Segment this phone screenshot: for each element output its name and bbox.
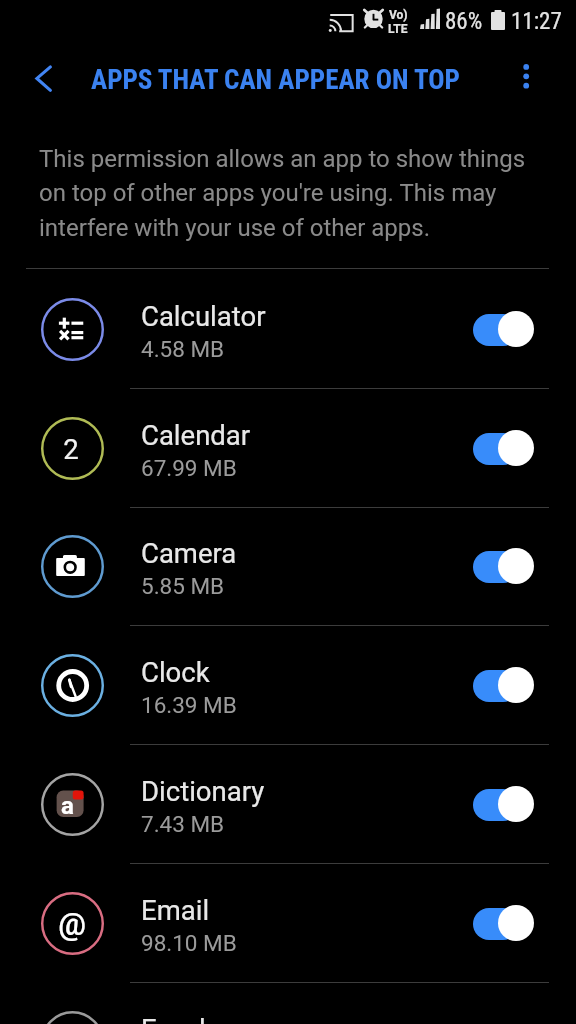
button[interactable]: More options: [508, 54, 546, 92]
staticText: @: [58, 906, 86, 942]
button[interactable]: Toggle Clock: [470, 667, 534, 705]
staticText: 86%: [445, 8, 483, 35]
button[interactable]: Navigate up: [18, 54, 60, 96]
staticText: Excel: [141, 1013, 206, 1024]
staticText: 16.39 MB: [141, 692, 237, 718]
button[interactable]: @: [0, 864, 576, 983]
staticText: 11:27: [511, 8, 562, 35]
staticText: a: [61, 792, 74, 820]
button[interactable]: Toggle Camera: [470, 548, 534, 586]
staticText: 5.85 MB: [141, 573, 225, 599]
staticText: Vo): [389, 8, 408, 22]
staticText: APPS THAT CAN APPEAR ON TOP: [91, 64, 460, 96]
button[interactable]: 2: [0, 389, 576, 508]
staticText: Dictionary: [141, 775, 265, 807]
button[interactable]: Toggle Email: [470, 905, 534, 943]
staticText: LTE: [388, 22, 408, 36]
staticText: Calendar: [141, 419, 251, 451]
button[interactable]: Calculator: [0, 270, 576, 389]
button[interactable]: Toggle Calendar: [470, 430, 534, 468]
staticText: 98.10 MB: [141, 930, 237, 956]
staticText: Camera: [141, 537, 237, 569]
staticText: 2: [63, 433, 79, 465]
staticText: 7.43 MB: [141, 811, 225, 837]
staticText: Calculator: [141, 300, 266, 332]
staticText: This permission allows an app to show th…: [39, 145, 531, 242]
button[interactable]: Excel: [0, 983, 576, 1024]
button[interactable]: Toggle Calculator: [470, 311, 534, 349]
staticText: 4.58 MB: [141, 336, 225, 362]
button[interactable]: Clock: [0, 626, 576, 745]
button[interactable]: Toggle Dictionary: [470, 786, 534, 824]
button[interactable]: a: [0, 745, 576, 864]
button[interactable]: Camera: [0, 507, 576, 626]
staticText: Email: [141, 894, 210, 926]
staticText: Clock: [141, 656, 210, 688]
staticText: 67.99 MB: [141, 455, 237, 481]
